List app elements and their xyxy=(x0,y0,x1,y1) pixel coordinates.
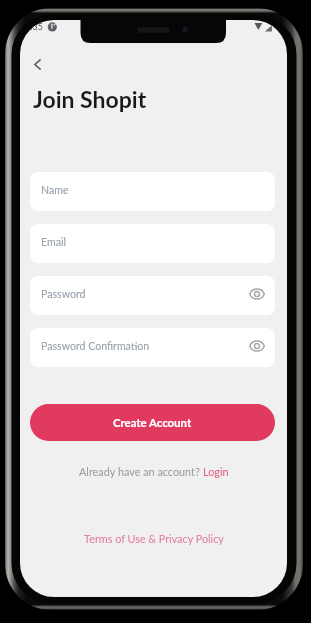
button[interactable]: Create Account xyxy=(30,404,275,441)
staticText: Email xyxy=(41,236,66,249)
button[interactable]: Password Confirmation xyxy=(30,328,275,367)
button[interactable]: Show password xyxy=(246,283,268,305)
staticText: Terms of Use & Privacy Policy xyxy=(84,532,224,545)
staticText: Password xyxy=(41,288,86,301)
staticText: Join Shopit xyxy=(33,85,147,113)
staticText: Login xyxy=(203,465,229,478)
button[interactable]: Password xyxy=(30,276,275,315)
button[interactable]: Email xyxy=(30,224,275,263)
button[interactable]: Terms of Use & Privacy Policy xyxy=(20,532,287,545)
button[interactable]: Login xyxy=(203,465,229,478)
staticText: Create Account xyxy=(113,416,192,430)
staticText: Already have an account? xyxy=(79,465,203,478)
staticText: Password Confirmation xyxy=(41,340,150,353)
button[interactable]: Back xyxy=(23,50,51,78)
staticText: Name xyxy=(41,184,69,197)
button[interactable]: Name xyxy=(30,172,275,211)
staticText: 9:35 xyxy=(25,21,43,32)
button[interactable]: Show password xyxy=(246,335,268,357)
